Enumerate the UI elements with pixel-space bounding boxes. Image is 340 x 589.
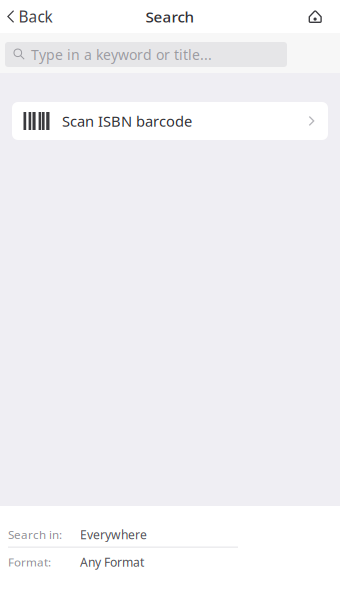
button[interactable]: Format:	[0, 552, 340, 572]
staticText: Format:	[8, 554, 51, 570]
staticText: Search in:	[8, 527, 62, 542]
button[interactable]: Home	[294, 0, 340, 33]
button[interactable]: Type in a keyword or title...	[5, 42, 287, 67]
staticText: Scan ISBN barcode	[62, 111, 192, 131]
button[interactable]: Back	[0, 0, 64, 33]
button[interactable]: Search in:	[0, 525, 340, 547]
staticText: Back	[18, 6, 52, 27]
staticText: Everywhere	[80, 526, 147, 543]
staticText: Type in a keyword or title...	[31, 45, 212, 64]
staticText: Any Format	[80, 554, 144, 570]
button[interactable]: Scan ISBN barcode	[12, 102, 328, 140]
staticText: Search	[145, 6, 194, 27]
